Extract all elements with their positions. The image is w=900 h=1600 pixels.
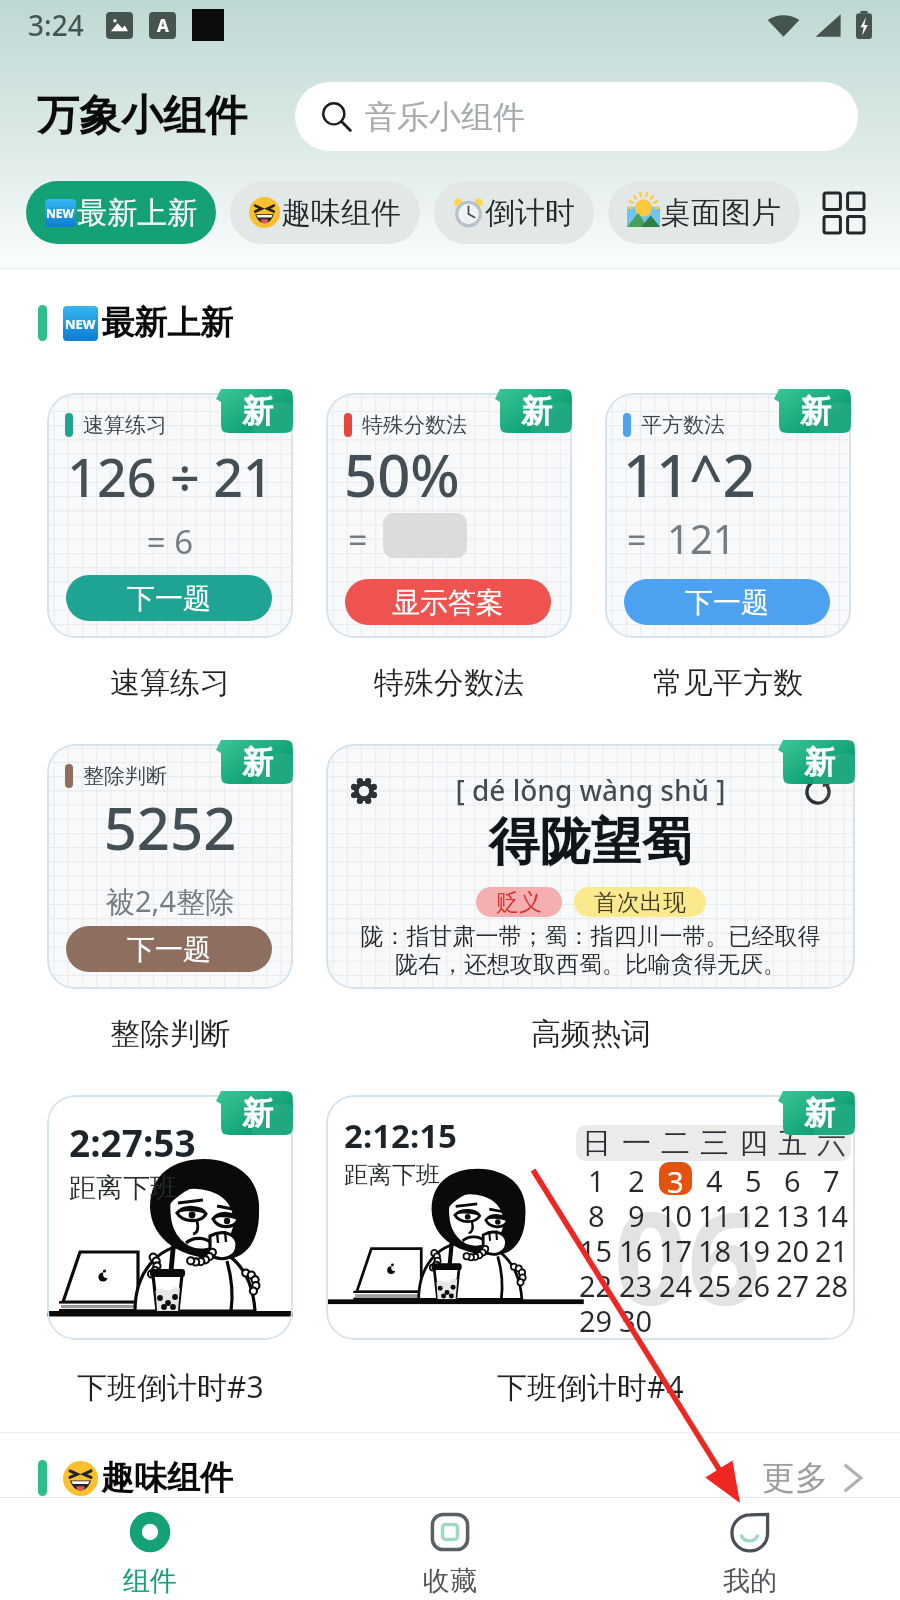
button[interactable]: 桌面图片: [608, 181, 800, 244]
staticText: =: [627, 517, 647, 563]
staticText: 新: [804, 1094, 835, 1133]
staticText: 19: [737, 1231, 771, 1266]
staticText: 陇右，还想攻取西蜀。比喻贪得无厌。: [326, 950, 855, 979]
staticText: 26: [737, 1266, 771, 1301]
button[interactable]: 下一题: [66, 575, 272, 621]
staticText: 6: [784, 1161, 801, 1196]
button[interactable]: 趣味组件: [230, 181, 420, 244]
staticText: 显示答案: [392, 585, 504, 620]
staticText: 趣味组件: [101, 1457, 233, 1499]
staticText: 首次出现: [594, 888, 686, 917]
button[interactable]: 下一题: [624, 579, 830, 625]
staticText: 1: [588, 1161, 605, 1196]
staticText: 14: [815, 1196, 849, 1231]
staticText: 新: [800, 392, 831, 431]
staticText: 15: [579, 1231, 613, 1266]
staticText: 下班倒计时#4: [497, 1366, 684, 1407]
staticText: 22: [579, 1266, 613, 1301]
staticText: 距离下班: [344, 1160, 440, 1190]
staticText: 24: [659, 1266, 693, 1301]
button[interactable]: 下一题: [66, 926, 272, 972]
button[interactable]: Grid view: [814, 183, 874, 243]
staticText: 速算练习: [110, 664, 230, 702]
staticText: 4: [706, 1161, 723, 1196]
staticText: 倒计时: [485, 194, 575, 232]
staticText: 11: [698, 1196, 732, 1231]
staticText: 新: [804, 743, 835, 782]
staticText: 28: [815, 1266, 849, 1301]
button[interactable]: 倒计时: [434, 181, 594, 244]
staticText: 20: [776, 1231, 810, 1266]
staticText: 5: [745, 1161, 762, 1196]
staticText: 29: [579, 1301, 613, 1332]
staticText: 三: [700, 1125, 729, 1161]
staticText: 得陇望蜀: [326, 810, 855, 874]
button[interactable]: 显示答案: [345, 579, 551, 625]
button[interactable]: 收藏: [300, 1507, 600, 1600]
staticText: 5252: [47, 788, 293, 867]
staticText: 特殊分数法: [374, 664, 524, 702]
staticText: 50%: [344, 435, 460, 514]
staticText: 收藏: [423, 1564, 477, 1598]
button[interactable]: 音乐小组件: [295, 82, 858, 151]
staticText: 平方数法: [641, 412, 725, 438]
staticText: 17: [659, 1231, 693, 1266]
staticText: 13: [776, 1196, 810, 1231]
staticText: 贬义: [496, 888, 542, 917]
button[interactable]: 组件: [0, 1507, 300, 1600]
staticText: 最新上新: [101, 302, 233, 344]
staticText: 日: [582, 1125, 611, 1161]
staticText: 21: [815, 1231, 849, 1266]
staticText: =: [348, 517, 368, 563]
staticText: 陇：指甘肃一带；蜀：指四川一带。已经取得: [326, 922, 855, 951]
staticText: 整除判断: [83, 763, 167, 789]
staticText: 下一题: [127, 581, 211, 616]
staticText: 趣味组件: [281, 194, 401, 232]
staticText: 一: [622, 1125, 651, 1161]
staticText: 16: [619, 1231, 653, 1266]
staticText: 我的: [723, 1564, 777, 1598]
staticText: 被2,4整除: [47, 881, 293, 921]
staticText: 组件: [123, 1564, 177, 1598]
staticText: 下一题: [127, 932, 211, 967]
staticText: 8: [588, 1196, 605, 1231]
staticText: 更多: [762, 1457, 828, 1499]
staticText: 万象小组件: [37, 90, 247, 143]
staticText: 四: [739, 1125, 768, 1161]
staticText: 新: [242, 392, 273, 431]
staticText: 高频热词: [531, 1015, 651, 1053]
staticText: 桌面图片: [661, 194, 781, 232]
staticText: 7: [823, 1161, 840, 1196]
staticText: 新: [521, 392, 552, 431]
staticText: A: [157, 14, 169, 37]
staticText: 25: [698, 1266, 732, 1301]
staticText: 23: [619, 1266, 653, 1301]
staticText: 整除判断: [110, 1015, 230, 1053]
staticText: 27: [776, 1266, 810, 1301]
staticText: 2:12:15: [344, 1113, 457, 1158]
staticText: 2:27:53: [69, 1117, 196, 1167]
staticText: NEW: [65, 315, 96, 333]
staticText: 二: [661, 1125, 690, 1161]
staticText: 18: [698, 1231, 732, 1266]
staticText: NEW: [46, 205, 75, 221]
staticText: 距离下班: [69, 1171, 177, 1205]
staticText: 3: [667, 1162, 684, 1195]
staticText: = 6: [47, 519, 293, 564]
staticText: 新: [242, 743, 273, 782]
button[interactable]: 我的: [600, 1507, 900, 1600]
staticText: 11^2: [623, 435, 756, 514]
staticText: 最新上新: [77, 194, 197, 232]
staticText: 六: [817, 1125, 846, 1161]
staticText: 新: [242, 1094, 273, 1133]
staticText: 12: [737, 1196, 771, 1231]
staticText: 06: [614, 1168, 761, 1340]
staticText: 速算练习: [83, 412, 167, 438]
staticText: 特殊分数法: [362, 412, 467, 438]
staticText: 下一题: [685, 585, 769, 620]
staticText: 五: [778, 1125, 807, 1161]
staticText: 126 ÷ 21: [47, 441, 293, 512]
button[interactable]: NEW: [26, 181, 216, 244]
button[interactable]: 更多: [756, 1448, 872, 1508]
staticText: 9: [628, 1196, 645, 1231]
